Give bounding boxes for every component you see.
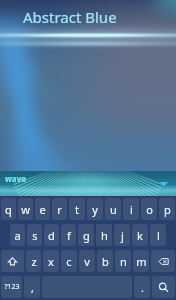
staticText: e (39, 202, 46, 217)
staticText: r (57, 202, 62, 217)
button[interactable]: f (61, 224, 76, 246)
button[interactable]: ?123 (1, 276, 22, 298)
button[interactable]: t (69, 198, 85, 220)
button[interactable]: n (115, 250, 131, 272)
button[interactable]: k (132, 224, 148, 246)
staticText: c (66, 254, 72, 269)
button[interactable]: q (1, 198, 16, 220)
staticText: j (121, 228, 124, 243)
staticText: Abstract Blue (23, 7, 117, 27)
staticText: h (101, 228, 108, 243)
staticText: g (83, 228, 90, 243)
staticText: t (75, 202, 79, 217)
staticText: l (157, 228, 160, 243)
button[interactable]: z (26, 250, 41, 272)
staticText: q (5, 202, 12, 217)
button[interactable]: j (114, 224, 130, 246)
button[interactable]: l (150, 224, 166, 246)
staticText: k (137, 228, 143, 243)
button[interactable]: b (97, 250, 113, 272)
button[interactable]: e (35, 198, 50, 220)
staticText: a (14, 228, 21, 243)
staticText: p (164, 202, 171, 217)
button[interactable]: v (79, 250, 95, 272)
staticText: b (102, 254, 109, 269)
button[interactable]: u (105, 198, 121, 220)
button[interactable]: y (87, 198, 103, 220)
button[interactable]: s (27, 224, 42, 246)
staticText: x (48, 254, 54, 269)
button[interactable]: g (78, 224, 94, 246)
button[interactable]: . (134, 276, 150, 298)
button[interactable]: p (159, 198, 175, 220)
staticText: wave (5, 173, 26, 184)
staticText: ?123 (4, 282, 20, 292)
staticText: , (31, 280, 34, 295)
staticText: z (31, 254, 37, 269)
button[interactable]: i (123, 198, 139, 220)
button[interactable]: w (18, 198, 33, 220)
button[interactable]: , (24, 276, 40, 298)
staticText: . (141, 280, 144, 295)
button[interactable]: Backspace (151, 250, 175, 272)
staticText: i (130, 202, 133, 217)
staticText: m (136, 254, 147, 269)
staticText: w (21, 202, 30, 217)
staticText: u (110, 202, 117, 217)
button[interactable]: Shift (1, 250, 24, 272)
button[interactable]: x (43, 250, 59, 272)
button[interactable]: m (133, 250, 149, 272)
staticText: o (146, 202, 153, 217)
staticText: n (120, 254, 127, 269)
button[interactable]: a (10, 224, 25, 246)
staticText: y (92, 202, 98, 217)
button[interactable]: c (61, 250, 77, 272)
staticText: f (67, 228, 71, 243)
staticText: d (48, 228, 55, 243)
button[interactable]: o (141, 198, 157, 220)
button[interactable]: d (44, 224, 59, 246)
button[interactable]: Expand keyboard (159, 179, 169, 189)
staticText: s (32, 228, 38, 243)
staticText: v (84, 254, 90, 269)
button[interactable]: Search (152, 276, 175, 298)
button[interactable]: r (52, 198, 67, 220)
button[interactable]: h (96, 224, 112, 246)
